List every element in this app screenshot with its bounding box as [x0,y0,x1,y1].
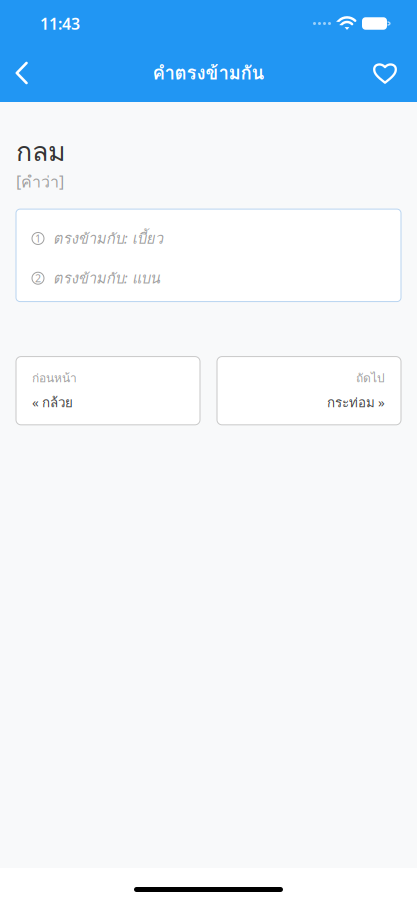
staticText: คำตรงข้ามกัน [152,58,264,87]
button[interactable]: ก่อนหน้า [16,357,200,425]
staticText: ถัดไป [356,369,385,387]
button[interactable]: ถัดไป [217,357,401,425]
staticText: ตรงข้ามกับ: เบี้ยว [53,227,163,250]
staticText: « กล้วย [32,392,73,413]
staticText: [คำว่า] [16,169,64,194]
staticText: ก่อนหน้า [32,369,77,387]
staticText: 2 [35,271,41,285]
staticText: กระท่อม » [327,392,385,413]
staticText: 1 [35,231,41,246]
button[interactable]: Favorite [363,48,417,98]
staticText: ตรงข้ามกับ: แบน [53,267,160,289]
staticText: 11:43 [40,13,80,34]
button[interactable]: Back [0,48,42,98]
staticText: กลม [16,131,66,172]
